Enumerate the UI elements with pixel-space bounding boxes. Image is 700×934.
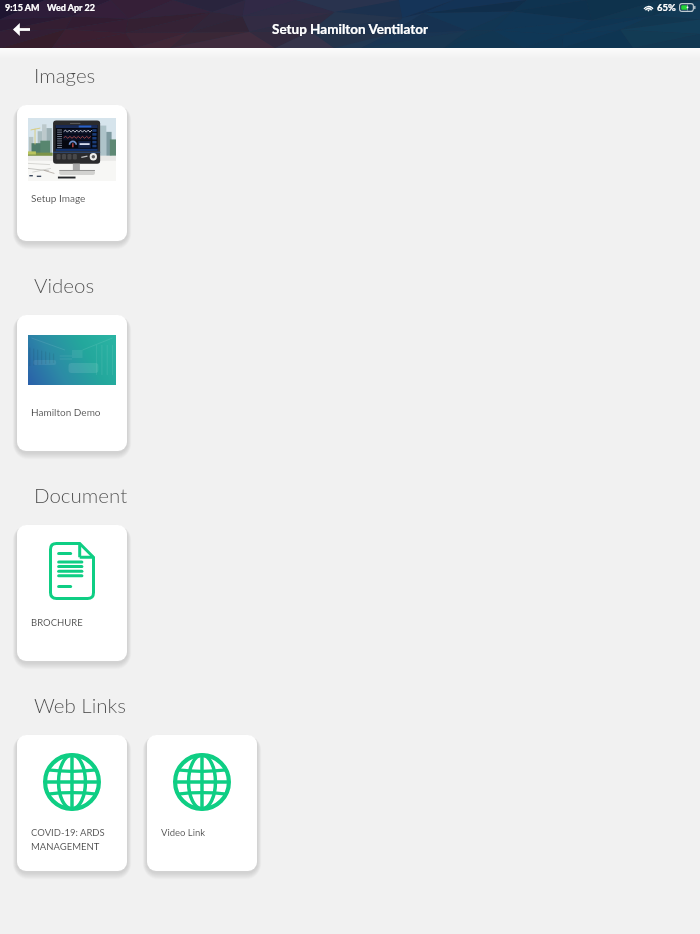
staticText: Hamilton Demo [31,406,119,418]
staticText: Videos [34,273,95,298]
staticText: Setup Hamilton Ventilator [272,21,428,37]
staticText: Web Links [34,693,127,718]
staticText: Setup Image [31,192,119,204]
staticText: Document [34,483,128,508]
staticText: Images [34,63,96,88]
button[interactable]: Video Link [147,735,257,871]
staticText: BROCHURE [31,617,119,628]
staticText: 65% [657,2,676,13]
staticText: Video Link [161,827,249,838]
staticText: 9:15 AM [5,2,40,13]
button[interactable]: BROCHURE [17,525,127,661]
staticText: Wed Apr 22 [47,2,95,13]
button[interactable]: Setup Image [17,105,127,241]
staticText: COVID-19: ARDS MANAGEMENT [31,827,119,852]
button[interactable]: COVID-19: ARDS MANAGEMENT [17,735,127,871]
button[interactable]: Hamilton Demo [17,315,127,451]
button[interactable]: Back [5,13,37,45]
